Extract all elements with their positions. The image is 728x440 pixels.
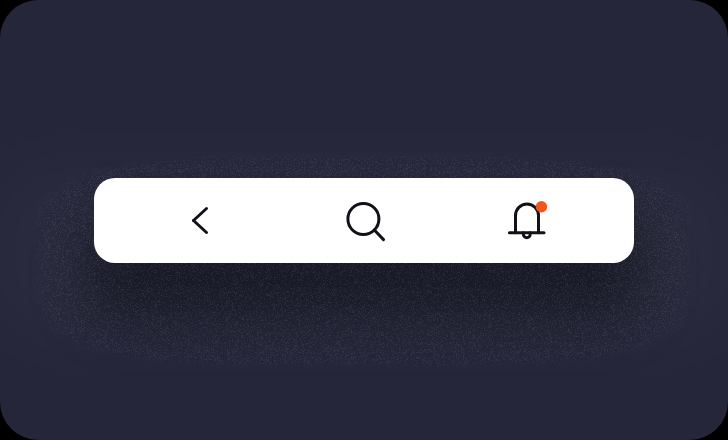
- button[interactable]: Notifications: [496, 190, 558, 252]
- button[interactable]: Back: [169, 190, 231, 252]
- button[interactable]: Search: [334, 190, 396, 252]
